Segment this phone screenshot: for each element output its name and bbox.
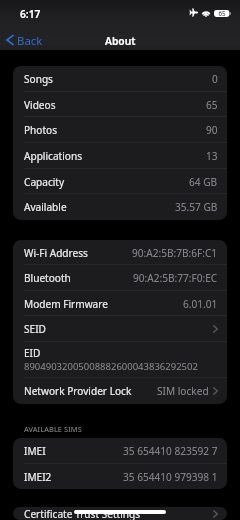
staticText: SEID <box>24 322 46 336</box>
button[interactable]: Back <box>6 33 43 47</box>
button[interactable]: Wi-Fi Address <box>13 240 227 265</box>
staticText: 90:A2:5B:7B:6F:C1 <box>132 246 218 260</box>
button[interactable]: SEID <box>13 316 227 342</box>
staticText: 65 <box>218 9 226 17</box>
staticText: 65 <box>206 98 218 112</box>
other: Airplane mode <box>189 8 198 17</box>
button[interactable]: Certificate Trust Settings <box>13 507 227 520</box>
staticText: 64 GB <box>189 175 218 189</box>
button[interactable]: Applications <box>13 143 227 169</box>
staticText: 90:A2:5B:77:F0:EC <box>133 271 218 285</box>
staticText: 0 <box>212 72 218 86</box>
button[interactable]: Videos <box>13 92 227 117</box>
staticText: 35 654410 823592 7 <box>123 444 218 458</box>
staticText: Modem Firmware <box>24 297 108 311</box>
staticText: IMEI2 <box>24 470 52 484</box>
staticText: EID <box>24 346 41 360</box>
staticText: 6:17 <box>20 7 41 21</box>
button[interactable]: Bluetooth <box>13 265 227 291</box>
button[interactable]: IMEI2 <box>13 464 227 489</box>
staticText: Available <box>24 200 67 214</box>
other: Battery 65 percent <box>214 10 231 17</box>
staticText: 35.57 GB <box>175 200 218 214</box>
staticText: IMEI <box>24 444 46 458</box>
staticText: 35 654410 979398 1 <box>123 470 218 484</box>
staticText: Wi-Fi Address <box>24 246 88 260</box>
staticText: 90 <box>206 123 218 137</box>
staticText: Certificate Trust Settings <box>24 507 141 520</box>
button[interactable]: Modem Firmware <box>13 291 227 316</box>
staticText: About <box>105 34 136 48</box>
staticText: Photos <box>24 123 58 137</box>
button[interactable]: Songs <box>13 66 227 92</box>
staticText: Network Provider Lock <box>24 384 132 398</box>
staticText: Applications <box>24 149 83 163</box>
staticText: 13 <box>206 149 218 163</box>
other: Wi-Fi <box>201 8 211 17</box>
button[interactable]: Network Provider Lock <box>13 378 227 404</box>
button[interactable]: EID <box>13 342 227 378</box>
button[interactable]: Photos <box>13 117 227 143</box>
staticText: Songs <box>24 72 53 86</box>
button[interactable]: Available <box>13 194 227 220</box>
staticText: Bluetooth <box>24 271 71 285</box>
staticText: 89049032005008882600043836292502 <box>24 360 198 373</box>
staticText: AVAILABLE SIMS <box>24 424 82 434</box>
staticText: SIM locked <box>157 384 209 398</box>
button[interactable]: IMEI <box>13 438 227 464</box>
staticText: Capacity <box>24 175 65 189</box>
staticText: Videos <box>24 98 56 112</box>
staticText: 6.01.01 <box>183 297 218 311</box>
button[interactable]: Capacity <box>13 169 227 194</box>
staticText: Back <box>17 33 43 47</box>
